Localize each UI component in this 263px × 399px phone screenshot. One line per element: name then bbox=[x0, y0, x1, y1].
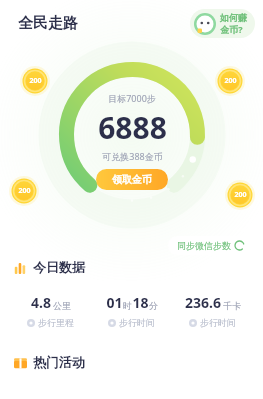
staticText: 步行里程 bbox=[38, 317, 74, 328]
staticText: 目标7000步 bbox=[108, 92, 156, 104]
button[interactable]: 领取金币 bbox=[96, 169, 168, 190]
staticText: 千卡 bbox=[223, 300, 241, 311]
button[interactable]: 4.8 bbox=[10, 281, 253, 340]
button[interactable]: 金币 200 bbox=[215, 66, 245, 96]
staticText: 6888 bbox=[98, 107, 167, 148]
staticText: 全民走路 bbox=[18, 14, 78, 33]
staticText: 领取金币 bbox=[112, 173, 152, 186]
staticText: 如何赚 bbox=[220, 12, 247, 23]
staticText: 分 bbox=[149, 300, 158, 311]
staticText: 可兑换388金币 bbox=[102, 150, 163, 162]
staticText: 200 bbox=[234, 190, 247, 200]
button[interactable]: 金币 200 bbox=[9, 176, 39, 206]
staticText: 200 bbox=[224, 76, 237, 86]
staticText: 金币? bbox=[220, 23, 243, 35]
button[interactable]: 金币 200 bbox=[20, 66, 50, 96]
staticText: 时 bbox=[123, 300, 132, 311]
staticText: 公里 bbox=[53, 300, 71, 311]
staticText: 01 bbox=[106, 293, 123, 312]
staticText: 同步微信步数 bbox=[177, 240, 231, 251]
button[interactable]: 金币 200 bbox=[225, 180, 255, 210]
button[interactable]: 如何赚 bbox=[190, 9, 255, 38]
staticText: 200 bbox=[29, 76, 42, 86]
staticText: 18 bbox=[132, 293, 149, 312]
staticText: 4.8 bbox=[31, 293, 51, 312]
staticText: 200 bbox=[18, 186, 31, 196]
staticText: 步行时间 bbox=[200, 317, 236, 328]
staticText: 236.6 bbox=[185, 293, 221, 312]
staticText: 今日数据 bbox=[33, 259, 85, 275]
staticText: 步行时间 bbox=[119, 317, 155, 328]
staticText: 热门活动 bbox=[33, 354, 85, 370]
button[interactable]: 同步微信步数 bbox=[168, 236, 253, 255]
